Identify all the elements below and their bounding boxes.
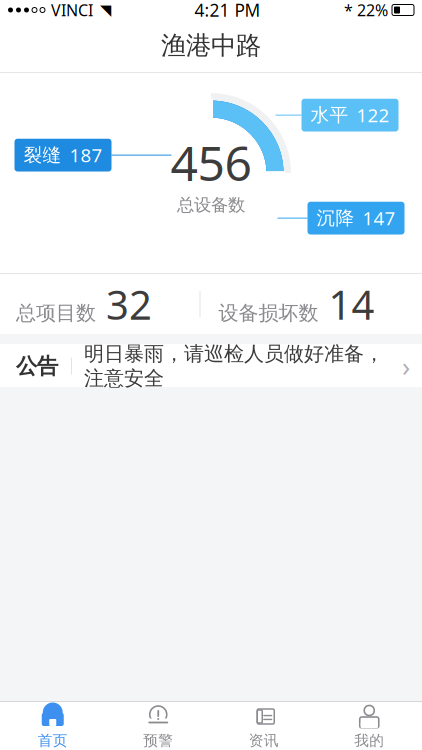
staticText: 456 — [170, 131, 251, 194]
staticText: 32 — [106, 278, 152, 331]
staticText: 14 — [328, 278, 374, 331]
staticText: 4:21 PM — [194, 0, 260, 21]
button[interactable]: 我的 — [316, 696, 422, 750]
staticText: 总设备数 — [177, 194, 245, 216]
staticText: ◥ — [100, 2, 111, 18]
staticText: 沉降 — [316, 207, 354, 230]
staticText: 首页 — [38, 731, 68, 749]
staticText: 明日暴雨，请巡检人员做好准备，注意安全 — [84, 342, 384, 391]
staticText: 147 — [362, 206, 395, 230]
button[interactable]: 资讯 — [211, 696, 316, 750]
staticText: 裂缝 — [23, 144, 61, 167]
button[interactable]: 公告 — [0, 344, 422, 388]
button[interactable]: 预警 — [105, 696, 211, 750]
staticText: 水平 — [310, 104, 348, 127]
staticText: › — [402, 348, 410, 384]
staticText: 渔港中路 — [161, 30, 261, 61]
staticText: 设备损坏数 — [218, 301, 318, 325]
staticText: 资讯 — [249, 731, 279, 749]
staticText: 总项目数 — [16, 301, 96, 325]
button[interactable]: 首页 — [0, 696, 105, 750]
staticText: 122 — [356, 103, 389, 127]
staticText: * — [344, 0, 353, 21]
staticText: VINCI — [51, 0, 93, 21]
staticText: 22% — [357, 0, 388, 21]
staticText: 187 — [69, 143, 102, 167]
staticText: 预警 — [143, 731, 173, 749]
staticText: 公告 — [16, 353, 58, 379]
staticText: 我的 — [354, 731, 384, 749]
